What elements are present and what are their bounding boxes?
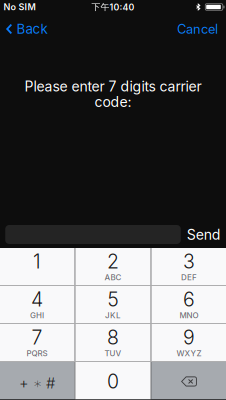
button[interactable]: 1 bbox=[0, 248, 75, 285]
button[interactable]: + ∗ # bbox=[0, 362, 75, 399]
button[interactable]: 6 bbox=[151, 286, 226, 323]
staticText: 1 bbox=[33, 250, 41, 273]
staticText: No SIM bbox=[3, 1, 35, 12]
staticText: MNO bbox=[179, 311, 198, 320]
staticText: 8 bbox=[107, 326, 119, 349]
staticText: 下午10:40 bbox=[91, 1, 134, 13]
staticText: 2 bbox=[107, 250, 119, 273]
staticText: 7 bbox=[31, 326, 42, 349]
button[interactable]: 0 bbox=[75, 362, 151, 399]
button[interactable]: Delete bbox=[151, 362, 226, 399]
staticText: Cancel bbox=[177, 21, 218, 37]
staticText: JKL bbox=[105, 311, 121, 320]
staticText: 6 bbox=[183, 288, 195, 311]
button[interactable]: Send bbox=[181, 225, 226, 244]
button[interactable]: 5 bbox=[75, 286, 151, 323]
staticText: 0 bbox=[107, 369, 119, 393]
staticText: TUV bbox=[104, 349, 121, 358]
staticText: + ∗ # bbox=[19, 374, 55, 392]
button[interactable]: 9 bbox=[151, 324, 226, 361]
button[interactable]: 3 bbox=[151, 248, 226, 285]
staticText: ABC bbox=[104, 273, 121, 282]
staticText: PQRS bbox=[26, 349, 47, 358]
button[interactable]: 4 bbox=[0, 286, 75, 323]
staticText: WXYZ bbox=[176, 349, 201, 358]
button[interactable]: Back bbox=[0, 14, 55, 44]
button[interactable]: 8 bbox=[75, 324, 151, 361]
button[interactable]: 2 bbox=[75, 248, 151, 285]
staticText: Send bbox=[187, 226, 221, 243]
staticText: 4 bbox=[31, 288, 43, 311]
staticText: Please enter 7 digits carrier bbox=[24, 78, 201, 95]
staticText: GHI bbox=[30, 311, 44, 320]
staticText: 3 bbox=[183, 250, 195, 273]
staticText: 5 bbox=[107, 288, 118, 311]
staticText: DEF bbox=[181, 273, 197, 282]
staticText: Back bbox=[16, 21, 47, 37]
staticText: code: bbox=[94, 93, 131, 110]
button[interactable]: 7 bbox=[0, 324, 75, 361]
button[interactable]: Cancel bbox=[169, 14, 226, 44]
staticText: 9 bbox=[183, 326, 195, 349]
